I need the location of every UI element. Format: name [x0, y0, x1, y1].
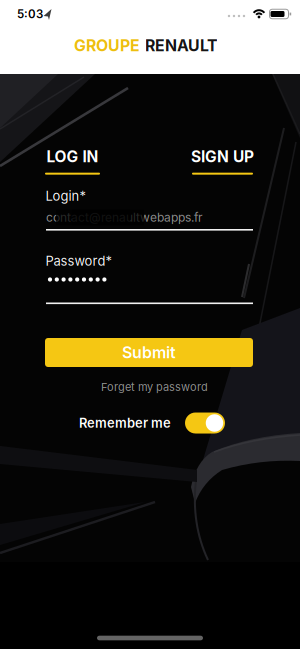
- staticText: contact@renaultwebapps.fr: [46, 210, 203, 225]
- staticText: Remember me: [79, 415, 171, 431]
- staticText: Forget my password: [101, 380, 208, 393]
- staticText: LOG IN: [46, 147, 98, 166]
- staticText: Login*: [45, 188, 86, 204]
- staticText: RENAULT: [145, 36, 218, 55]
- staticText: 5:03: [17, 7, 43, 21]
- button[interactable]: Password: [46, 275, 253, 305]
- staticText: GROUPE: [74, 36, 140, 55]
- button[interactable]: Remember me: [79, 412, 225, 433]
- button[interactable]: SIGN UP: [191, 147, 254, 175]
- staticText: Submit: [122, 343, 176, 362]
- button[interactable]: Login: [46, 207, 253, 230]
- button[interactable]: LOG IN: [45, 147, 100, 175]
- staticText: Password*: [45, 253, 112, 269]
- button[interactable]: Submit: [45, 338, 253, 367]
- staticText: SIGN UP: [191, 147, 254, 166]
- button[interactable]: Forget my password: [101, 380, 208, 393]
